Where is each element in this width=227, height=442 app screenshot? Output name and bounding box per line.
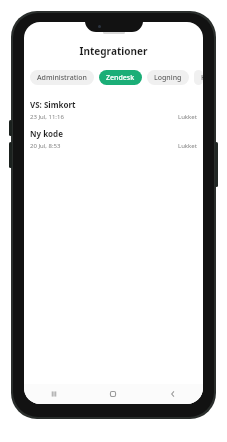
- staticText: Lukket: [178, 142, 197, 150]
- button[interactable]: Back: [143, 384, 203, 404]
- staticText: 20 Jul, 8:53: [30, 142, 61, 150]
- staticText: 23 Jul, 11:16: [30, 113, 64, 121]
- staticText: Ny kode: [30, 128, 63, 139]
- button[interactable]: Ny kode: [24, 126, 203, 155]
- staticText: Integrationer: [24, 44, 203, 58]
- button[interactable]: Home: [83, 384, 143, 404]
- staticText: Administration: [37, 73, 87, 83]
- staticText: Zendesk: [106, 73, 135, 83]
- button[interactable]: Logning: [147, 70, 189, 85]
- button[interactable]: Zendesk: [99, 70, 142, 85]
- button[interactable]: Administration: [30, 70, 94, 85]
- button[interactable]: Recent apps: [24, 384, 83, 404]
- button[interactable]: Hj: [194, 70, 203, 85]
- staticText: VS: Simkort: [30, 99, 76, 110]
- button[interactable]: VS: Simkort: [24, 97, 203, 126]
- staticText: Logning: [154, 73, 182, 83]
- staticText: Lukket: [178, 113, 197, 121]
